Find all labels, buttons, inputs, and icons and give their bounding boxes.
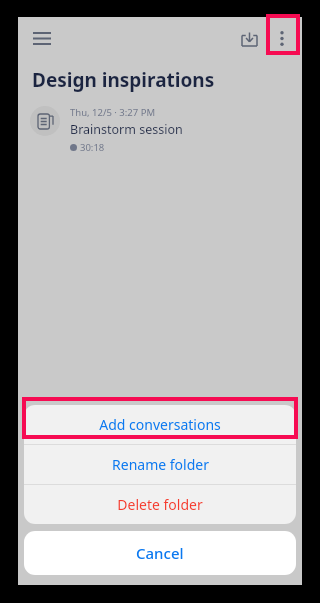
staticText: 30:18 — [80, 141, 105, 154]
button[interactable]: Download — [233, 22, 265, 54]
staticText: Add conversations — [99, 415, 221, 434]
button[interactable]: Cancel — [24, 531, 296, 575]
staticText: Delete folder — [117, 495, 203, 514]
staticText: Rename folder — [112, 455, 209, 474]
staticText: Brainstorm session — [70, 121, 183, 138]
staticText: Cancel — [136, 543, 184, 563]
staticText: Design inspirations — [32, 67, 215, 93]
button[interactable]: Rename folder — [24, 445, 296, 484]
button[interactable]: Menu — [26, 22, 58, 54]
button[interactable]: Add conversations — [24, 405, 296, 444]
staticText: Thu, 12/5 · 3:27 PM — [70, 106, 156, 119]
button[interactable]: More options — [265, 21, 299, 55]
button[interactable]: Thu, 12/5 · 3:27 PM — [18, 101, 302, 159]
button[interactable]: Delete folder — [24, 485, 296, 524]
